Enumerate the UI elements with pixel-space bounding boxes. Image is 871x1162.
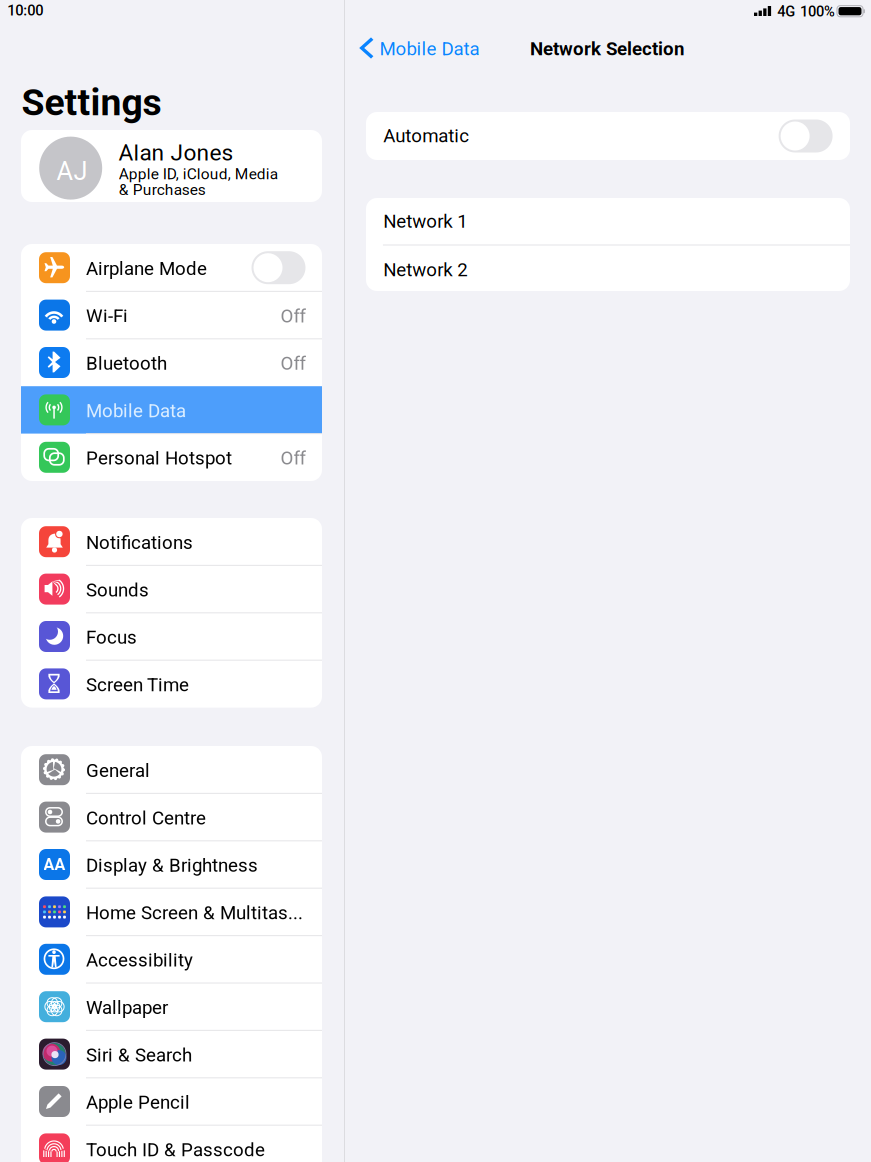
staticText: Wallpaper: [86, 997, 168, 1019]
button[interactable]: Network 2: [366, 244, 850, 291]
staticText: Mobile Data: [86, 400, 186, 422]
staticText: Focus: [86, 626, 137, 648]
button[interactable]: Airplane Mode: [21, 244, 322, 291]
staticText: Sounds: [86, 579, 149, 601]
staticText: 100%: [800, 3, 835, 20]
staticText: Alan Jones: [118, 139, 233, 166]
button[interactable]: AJ: [21, 130, 322, 202]
staticText: Home Screen & Multitas...: [86, 902, 303, 924]
button[interactable]: General: [21, 746, 322, 793]
staticText: Siri & Search: [86, 1044, 192, 1066]
staticText: Airplane Mode: [86, 258, 207, 280]
button[interactable]: Accessibility: [21, 936, 322, 983]
staticText: Network 2: [383, 259, 467, 281]
staticText: Bluetooth: [86, 352, 167, 374]
staticText: Apple ID, iCloud, Media: [119, 165, 278, 183]
button[interactable]: AA: [21, 841, 322, 888]
staticText: Personal Hotspot: [86, 447, 232, 469]
staticText: & Purchases: [119, 181, 206, 199]
staticText: 10:00: [7, 2, 43, 19]
staticText: Notifications: [86, 532, 193, 554]
staticText: Screen Time: [86, 674, 189, 696]
staticText: Touch ID & Passcode: [86, 1139, 265, 1161]
staticText: Wi-Fi: [86, 305, 128, 327]
staticText: Mobile Data: [379, 38, 479, 60]
button[interactable]: Network 1: [366, 198, 850, 244]
staticText: Control Centre: [86, 807, 206, 829]
staticText: Network 1: [383, 210, 467, 232]
button[interactable]: Mobile Data: [357, 36, 492, 64]
button[interactable]: Wi-Fi: [21, 291, 322, 339]
staticText: Apple Pencil: [86, 1091, 190, 1113]
button[interactable]: Siri & Search: [21, 1030, 322, 1078]
staticText: General: [86, 760, 150, 782]
button[interactable]: Bluetooth: [21, 339, 322, 386]
staticText: Off: [280, 447, 305, 469]
button[interactable]: Screen Time: [21, 660, 322, 708]
button[interactable]: Personal Hotspot: [21, 434, 322, 481]
button[interactable]: Apple Pencil: [21, 1078, 322, 1125]
button[interactable]: Touch ID & Passcode: [21, 1125, 322, 1162]
button[interactable]: Wallpaper: [21, 983, 322, 1030]
staticText: Off: [280, 352, 305, 374]
staticText: Off: [280, 305, 305, 327]
button[interactable]: Home Screen & Multitas...: [21, 888, 322, 936]
staticText: Settings: [21, 80, 161, 124]
staticText: Automatic: [383, 125, 469, 147]
staticText: 4G: [777, 3, 795, 20]
button[interactable]: Sounds: [21, 565, 322, 613]
button[interactable]: Notifications: [21, 518, 322, 565]
staticText: AJ: [56, 156, 87, 186]
button[interactable]: Control Centre: [21, 793, 322, 841]
staticText: Network Selection: [530, 38, 684, 60]
button[interactable]: Focus: [21, 613, 322, 660]
staticText: Accessibility: [86, 949, 193, 971]
staticText: Display & Brightness: [86, 854, 258, 876]
staticText: AA: [43, 855, 65, 874]
button[interactable]: Mobile Data: [21, 386, 322, 434]
